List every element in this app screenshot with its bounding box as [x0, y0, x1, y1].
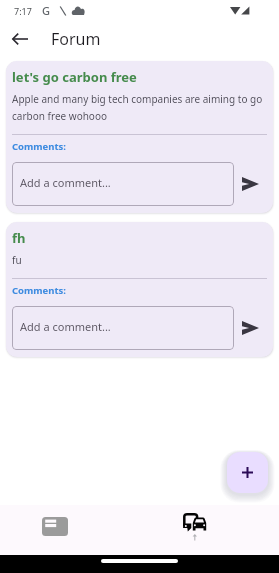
- button[interactable]: Articles: [0, 505, 140, 555]
- staticText: Apple and many big tech companies are ai…: [12, 92, 263, 106]
- staticText: Comments:: [12, 140, 66, 153]
- staticText: 7:17: [14, 5, 32, 17]
- staticText: carbon free wohooo: [12, 109, 108, 123]
- button[interactable]: Add: [227, 452, 268, 493]
- staticText: fu: [12, 253, 22, 267]
- button[interactable]: Send: [234, 165, 267, 203]
- staticText: Forum: [51, 28, 101, 50]
- button[interactable]: Add a comment...: [12, 162, 234, 206]
- button[interactable]: Back: [3, 22, 37, 56]
- button[interactable]: let's go carbon free: [6, 61, 273, 213]
- staticText: Comments:: [12, 284, 66, 297]
- staticText: G: [42, 3, 50, 18]
- button[interactable]: Send: [234, 309, 267, 347]
- button[interactable]: fh: [6, 222, 273, 357]
- staticText: Add a comment...: [20, 319, 111, 334]
- staticText: Add a comment...: [20, 175, 111, 190]
- staticText: fh: [12, 229, 26, 247]
- button[interactable]: Commute: [139, 505, 279, 555]
- staticText: let's go carbon free: [12, 68, 137, 86]
- button[interactable]: Add a comment...: [12, 306, 234, 350]
